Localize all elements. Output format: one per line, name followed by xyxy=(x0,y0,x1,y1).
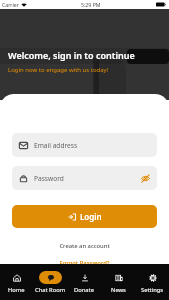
button[interactable]: Settings xyxy=(135,270,169,294)
button[interactable]: Password xyxy=(12,166,157,190)
staticText: Carrier xyxy=(2,1,19,8)
staticText: News xyxy=(111,286,126,294)
button[interactable]: Forgot Password? xyxy=(12,259,157,267)
button[interactable]: News xyxy=(101,270,135,294)
staticText: Home xyxy=(8,286,25,294)
staticText: Donate xyxy=(74,286,94,294)
staticText: Email address xyxy=(34,141,78,150)
staticText: Login xyxy=(80,211,102,222)
staticText: 5:29 PM xyxy=(81,1,101,8)
button[interactable]: Home xyxy=(0,270,33,294)
staticText: Settings xyxy=(141,286,164,294)
button[interactable]: Create an account xyxy=(12,242,157,250)
other: Show password xyxy=(141,174,150,183)
staticText: Login now to engage with us today! xyxy=(8,66,109,74)
button[interactable]: Donate xyxy=(67,270,101,294)
staticText: Welcome, sign in to continue xyxy=(8,49,135,61)
staticText: Chat Room xyxy=(35,286,66,294)
button[interactable]: Email address xyxy=(12,133,157,157)
button[interactable]: Chat Room xyxy=(33,270,67,294)
staticText: Password xyxy=(34,174,64,183)
button[interactable]: Login xyxy=(12,205,157,228)
